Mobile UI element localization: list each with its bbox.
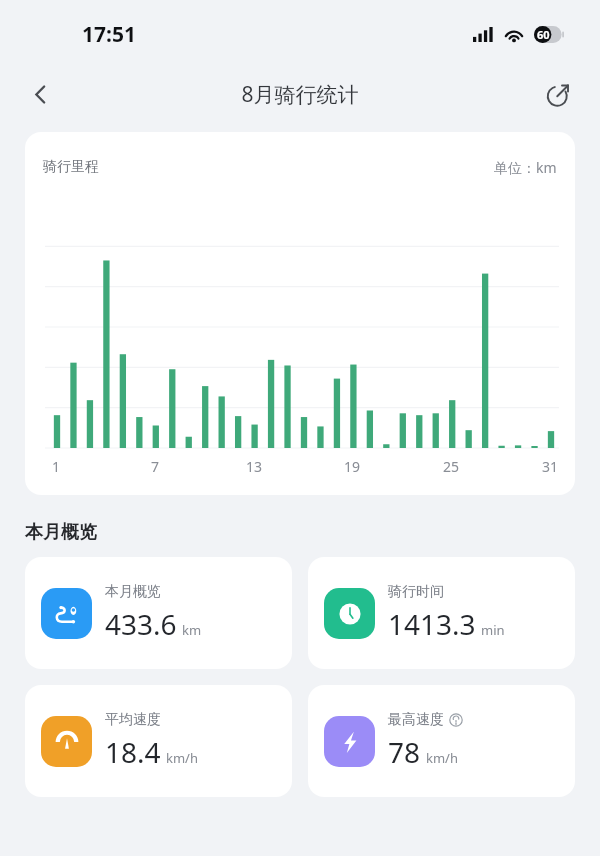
button[interactable]: Back — [18, 72, 62, 116]
staticText: 平均速度 — [105, 711, 161, 729]
staticText: km — [182, 621, 202, 639]
button[interactable]: 最高速度 — [308, 685, 575, 797]
staticText: km/h — [166, 749, 198, 767]
staticText: 18.4 — [105, 733, 161, 771]
staticText: 本月概览 — [25, 521, 97, 544]
staticText: 1 — [52, 457, 61, 476]
staticText: 骑行时间 — [388, 583, 444, 601]
staticText: min — [481, 621, 505, 639]
staticText: 60 — [537, 27, 550, 42]
staticText: 骑行里程 — [43, 158, 99, 176]
button[interactable]: Share — [536, 72, 580, 116]
staticText: 7 — [151, 457, 160, 476]
staticText: 433.6 — [105, 605, 177, 643]
staticText: 本月概览 — [105, 583, 161, 601]
button[interactable]: 本月概览 — [25, 557, 292, 669]
button[interactable]: 骑行时间 — [308, 557, 575, 669]
staticText: 78 — [388, 733, 421, 771]
staticText: 25 — [443, 457, 460, 476]
staticText: km/h — [426, 749, 458, 767]
staticText: 19 — [344, 457, 361, 476]
staticText: 最高速度 — [388, 711, 444, 729]
staticText: 31 — [542, 457, 559, 476]
staticText: 单位：km — [494, 158, 557, 177]
staticText: 1413.3 — [388, 605, 476, 643]
button[interactable]: 平均速度 — [25, 685, 292, 797]
button[interactable]: 骑行里程 — [25, 132, 575, 495]
staticText: 8月骑行统计 — [241, 80, 359, 109]
staticText: 17:51 — [82, 20, 136, 49]
staticText: 13 — [246, 457, 263, 476]
